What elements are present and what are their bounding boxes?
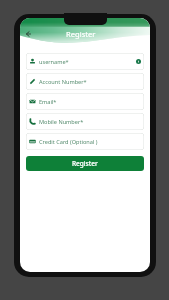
button[interactable]: Account Number*: [26, 73, 144, 90]
staticText: Account Number*: [39, 78, 87, 86]
button[interactable]: Credit Card (Optional ): [26, 133, 144, 150]
staticText: Register: [72, 159, 98, 168]
staticText: Credit Card (Optional ): [39, 138, 98, 146]
button[interactable]: Back: [22, 28, 34, 40]
button[interactable]: Mobile Number*: [26, 113, 144, 130]
button[interactable]: username*: [26, 53, 144, 70]
staticText: username*: [39, 58, 69, 66]
staticText: Mobile Number*: [39, 118, 84, 126]
staticText: Register: [66, 29, 96, 39]
button[interactable]: Register: [26, 156, 144, 171]
staticText: Email*: [39, 98, 57, 106]
button[interactable]: Email*: [26, 93, 144, 110]
